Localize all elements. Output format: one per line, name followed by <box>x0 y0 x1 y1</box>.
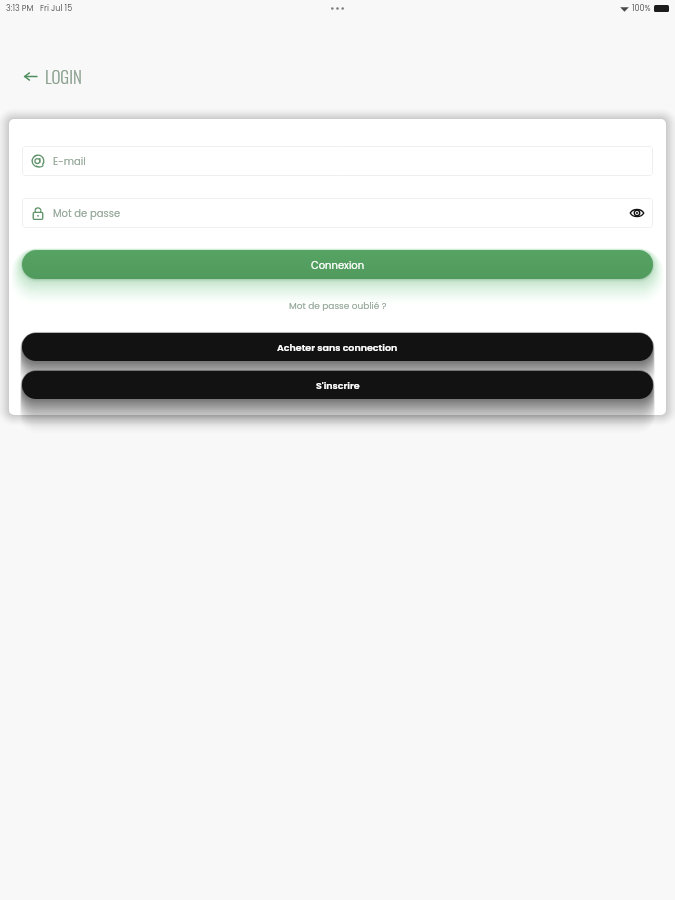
staticText: 100% <box>632 3 651 14</box>
staticText: E-mail <box>53 154 86 168</box>
button[interactable]: S'inscrire <box>22 371 653 399</box>
staticText: 3:13 PM <box>6 3 34 14</box>
staticText: Mot de passe <box>53 206 121 220</box>
staticText: LOGIN <box>45 64 82 89</box>
staticText: S'inscrire <box>316 379 360 392</box>
button[interactable]: Show password <box>627 203 647 223</box>
staticText: Acheter sans connection <box>277 341 398 354</box>
button[interactable]: Acheter sans connection <box>22 333 653 361</box>
button[interactable]: Mot de passe <box>22 198 653 228</box>
button[interactable]: Back <box>17 63 43 89</box>
staticText: Connexion <box>311 258 365 272</box>
button[interactable]: Mot de passe oublié ? <box>286 297 390 316</box>
button[interactable]: E-mail <box>22 146 653 176</box>
staticText: Fri Jul 15 <box>40 3 73 14</box>
button[interactable]: Connexion <box>22 250 653 279</box>
